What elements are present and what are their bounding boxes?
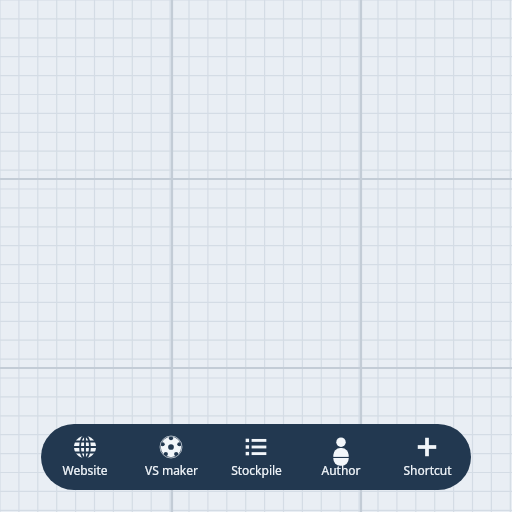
button[interactable]: Shortcut: [386, 424, 468, 490]
staticText: VS maker: [145, 462, 198, 478]
button[interactable]: Author: [300, 424, 382, 490]
button[interactable]: Stockpile: [215, 424, 297, 490]
staticText: Author: [321, 462, 361, 478]
staticText: Shortcut: [403, 462, 452, 478]
button[interactable]: VS maker: [130, 424, 212, 490]
button[interactable]: Website: [44, 424, 126, 490]
staticText: Website: [62, 462, 108, 478]
staticText: Stockpile: [231, 462, 282, 478]
